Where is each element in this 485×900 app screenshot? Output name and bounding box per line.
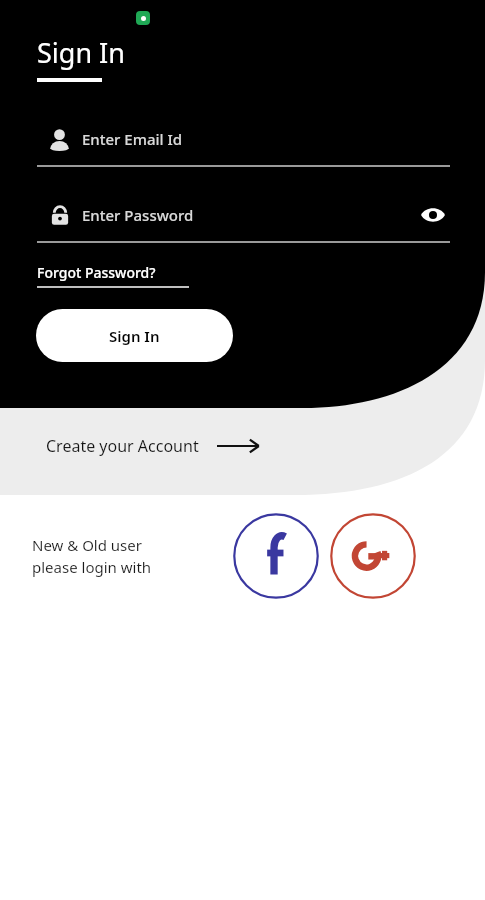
- staticText: Enter Email Id: [82, 129, 183, 149]
- staticText: Sign In: [37, 34, 125, 71]
- button[interactable]: Sign In: [36, 309, 233, 362]
- staticText: Create your Account: [46, 435, 199, 457]
- staticText: New & Old user please login with: [32, 535, 152, 578]
- staticText: Enter Password: [82, 205, 194, 225]
- button[interactable]: Enter Password: [0, 196, 485, 243]
- button[interactable]: Sign in with Google: [330, 513, 416, 599]
- button[interactable]: Show password: [416, 198, 450, 232]
- staticText: Sign In: [109, 326, 160, 346]
- button[interactable]: Enter Email Id: [0, 120, 485, 167]
- button[interactable]: Create your Account: [0, 420, 485, 472]
- button[interactable]: Sign in with Facebook: [233, 513, 319, 599]
- button[interactable]: Forgot Password?: [37, 263, 189, 288]
- staticText: Forgot Password?: [37, 263, 156, 282]
